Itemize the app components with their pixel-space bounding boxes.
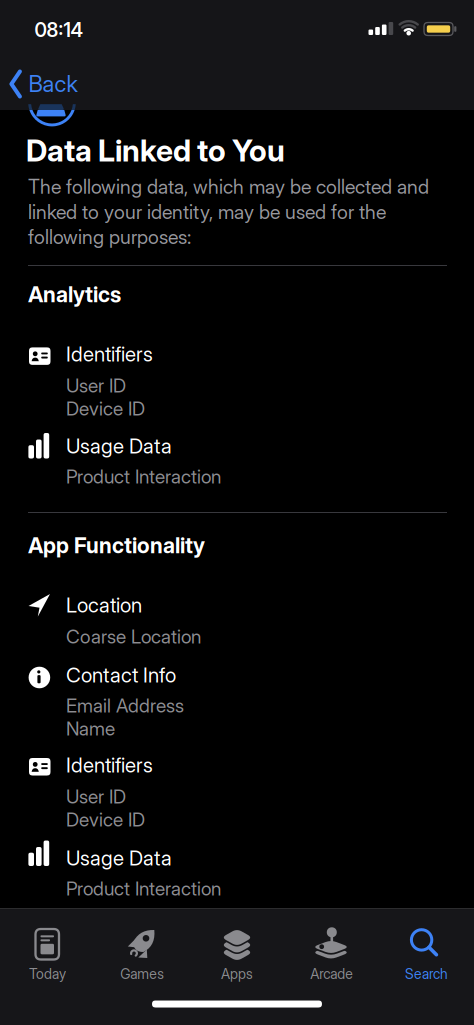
- staticText: Arcade: [310, 965, 353, 982]
- staticText: Name: [66, 717, 115, 740]
- staticText: Coarse Location: [66, 625, 201, 648]
- staticText: Analytics: [28, 281, 121, 307]
- staticText: Product Interaction: [66, 465, 221, 488]
- staticText: 08:14: [34, 18, 82, 42]
- staticText: Contact Info: [66, 663, 176, 687]
- staticText: Device ID: [66, 808, 145, 831]
- staticText: User ID: [66, 374, 126, 397]
- staticText: Usage Data: [66, 434, 172, 458]
- staticText: User ID: [66, 785, 126, 808]
- staticText: The following data, which may be collect…: [28, 175, 429, 249]
- staticText: Email Address: [66, 694, 184, 717]
- button[interactable]: Arcade: [284, 912, 379, 988]
- button[interactable]: Apps: [190, 912, 284, 988]
- staticText: Apps: [221, 965, 253, 982]
- button[interactable]: Games: [95, 912, 190, 988]
- staticText: App Functionality: [28, 532, 205, 558]
- staticText: Usage Data: [66, 846, 172, 870]
- staticText: Location: [66, 593, 142, 617]
- staticText: Games: [120, 965, 164, 982]
- staticText: Product Interaction: [66, 877, 221, 900]
- staticText: Identifiers: [66, 342, 153, 366]
- staticText: Back: [28, 70, 77, 97]
- staticText: Identifiers: [66, 753, 153, 777]
- button[interactable]: Back: [8, 66, 103, 104]
- staticText: Today: [29, 965, 66, 982]
- button[interactable]: Today: [0, 912, 95, 988]
- staticText: Device ID: [66, 397, 145, 420]
- staticText: Data Linked to You: [26, 132, 285, 169]
- button[interactable]: Search: [379, 912, 474, 988]
- staticText: Search: [405, 965, 448, 982]
